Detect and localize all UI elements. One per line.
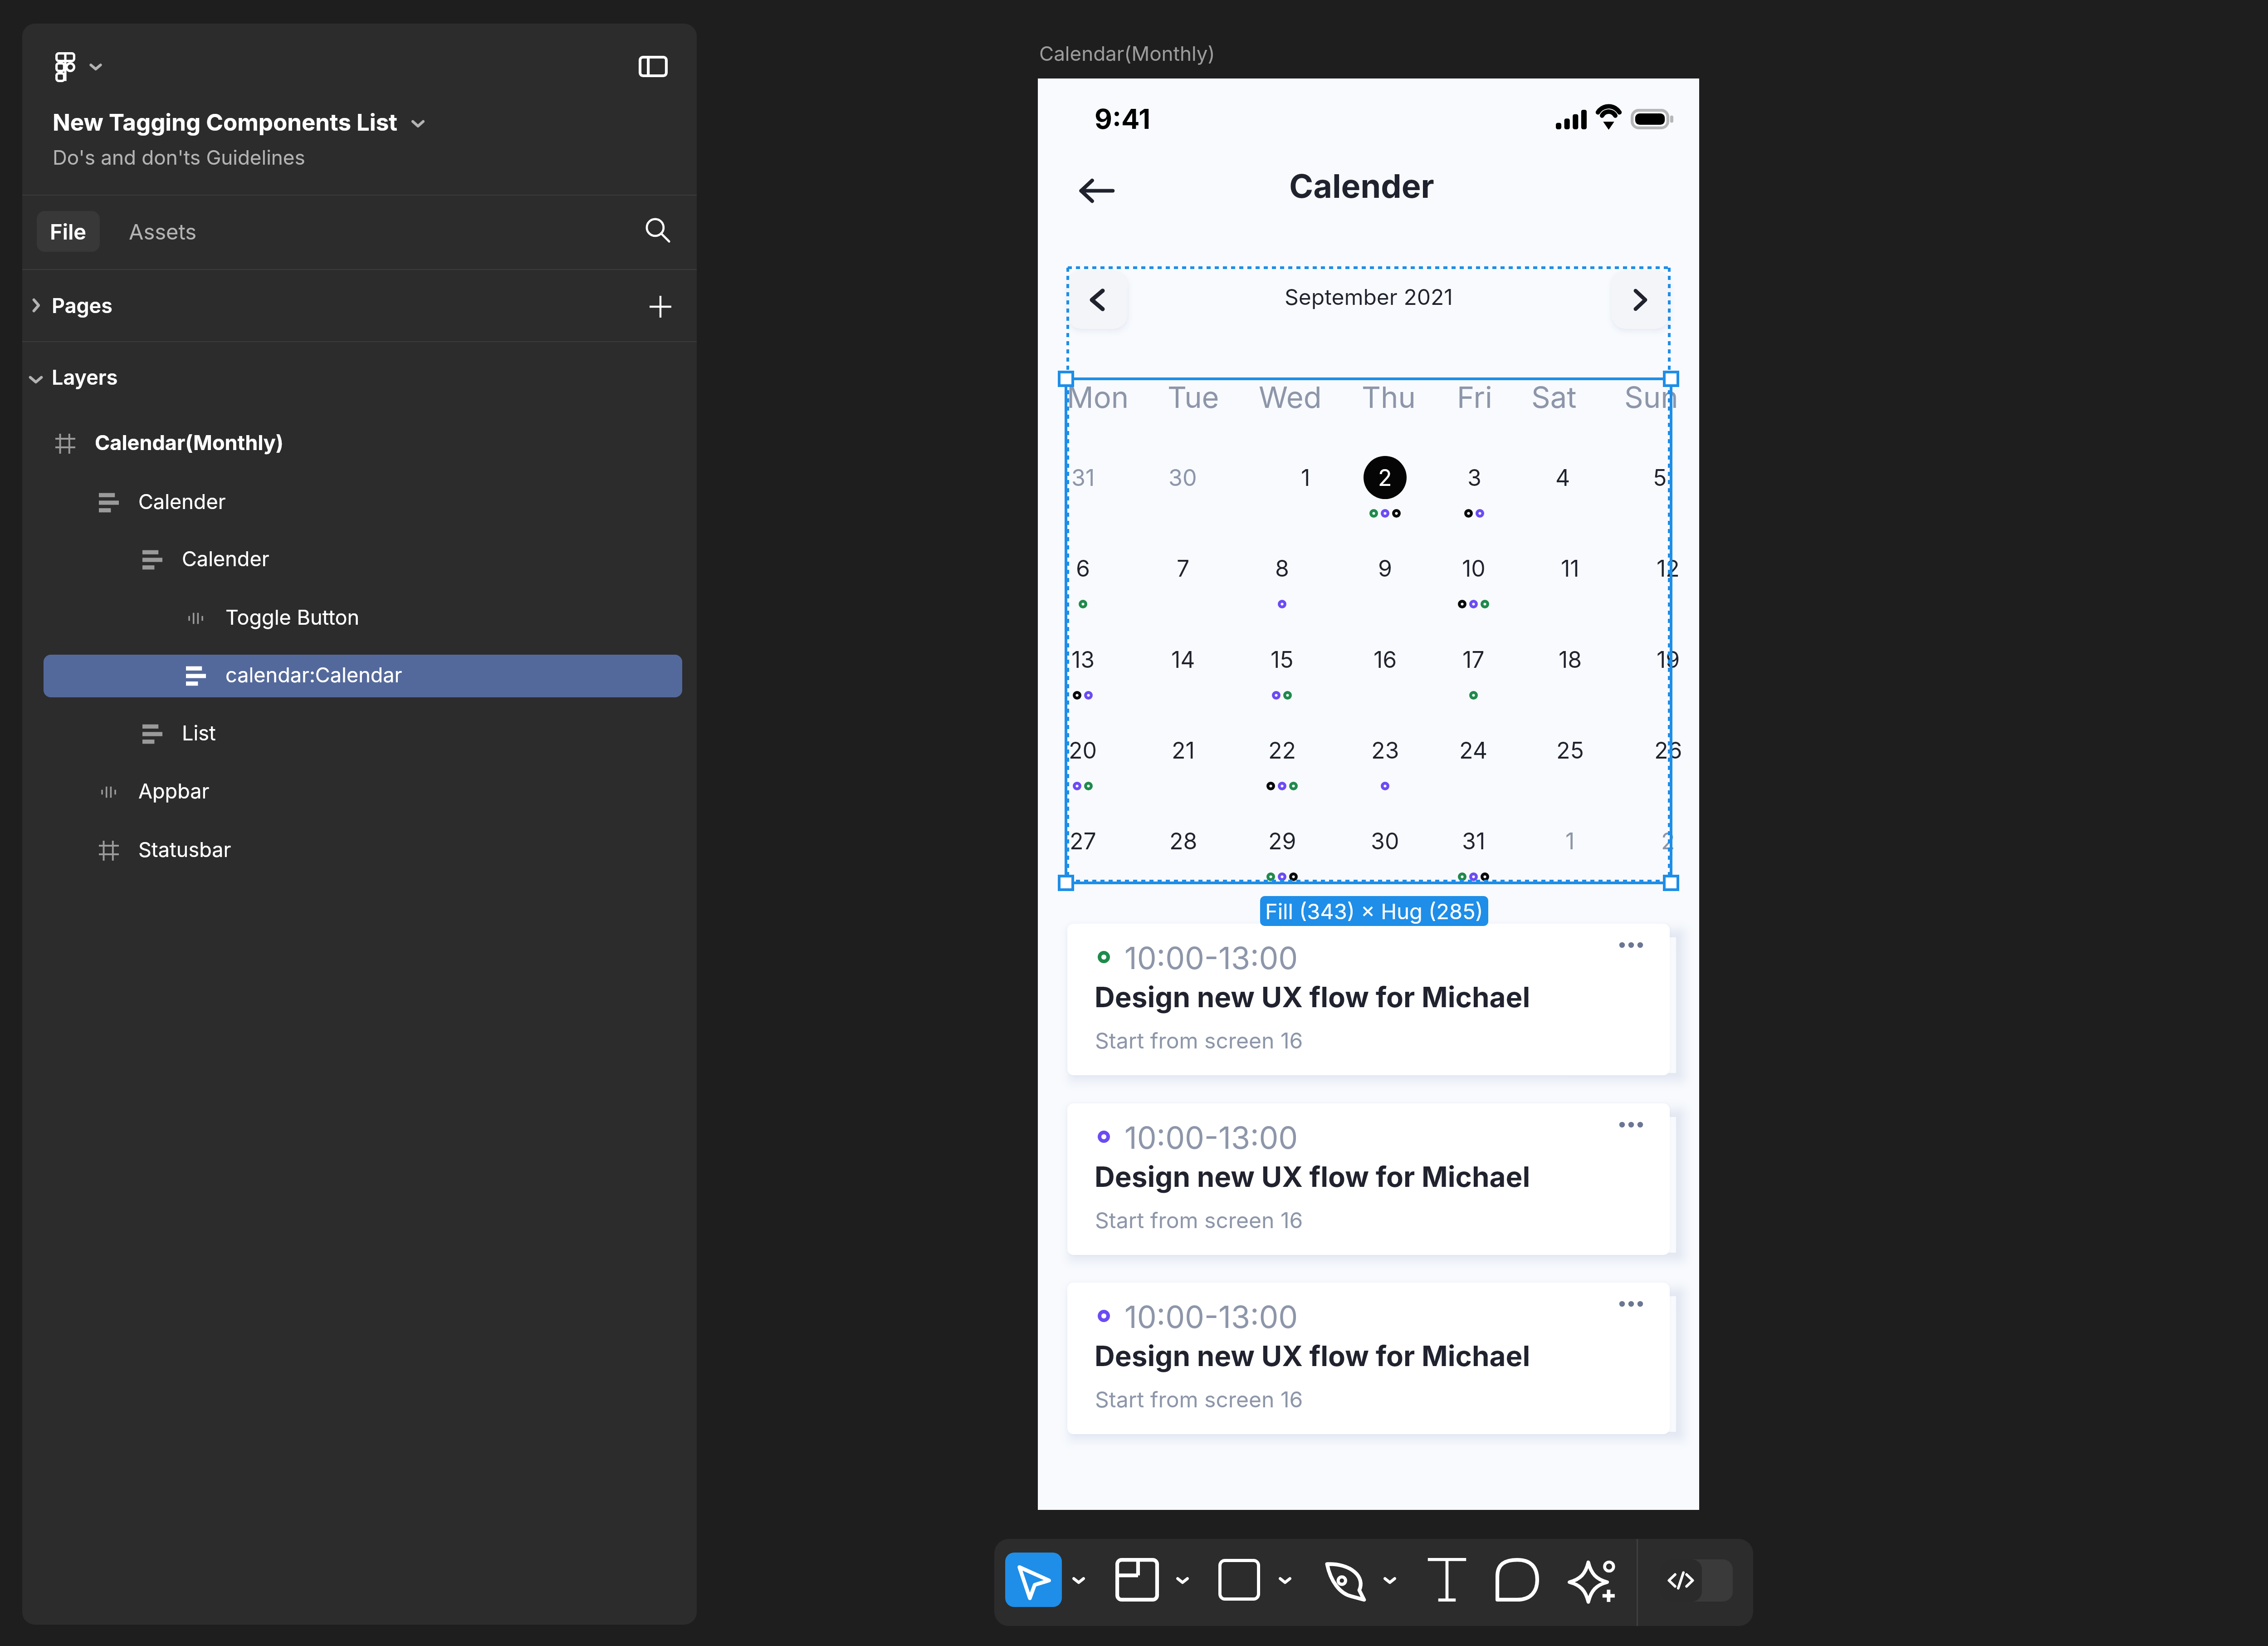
- button[interactable]: More options: [1608, 929, 1654, 961]
- button[interactable]: 12: [1619, 531, 1716, 623]
- staticText: 1: [1301, 464, 1310, 491]
- button[interactable]: [44, 829, 682, 872]
- button[interactable]: [44, 539, 682, 581]
- button[interactable]: 3: [1426, 441, 1523, 532]
- staticText: New Tagging Components List: [53, 108, 397, 137]
- staticText: 3: [1467, 464, 1481, 491]
- button[interactable]: 5: [1611, 441, 1708, 532]
- staticText: 14: [1171, 646, 1195, 673]
- button[interactable]: 10: [1425, 531, 1522, 623]
- staticText: Start from screen 16: [1095, 1386, 1303, 1412]
- button[interactable]: 1: [1521, 804, 1618, 896]
- button[interactable]: More tools: [1272, 1568, 1298, 1592]
- button[interactable]: [44, 713, 682, 755]
- button[interactable]: 25: [1521, 713, 1618, 805]
- staticText: 9:41: [1095, 103, 1151, 136]
- staticText: 30: [1168, 464, 1197, 491]
- button[interactable]: Pen tool: [1323, 1558, 1366, 1602]
- button[interactable]: File: [37, 211, 100, 252]
- button[interactable]: Next month: [1611, 271, 1670, 329]
- staticText: 11: [1561, 555, 1579, 582]
- staticText: Sat: [1531, 379, 1577, 411]
- button[interactable]: Search: [635, 207, 680, 253]
- button[interactable]: 29: [1233, 804, 1330, 896]
- staticText: 22: [1268, 737, 1296, 764]
- button[interactable]: 10:00-13:00: [1067, 924, 1670, 1075]
- staticText: 30: [1371, 828, 1399, 855]
- button[interactable]: [44, 655, 682, 697]
- staticText: Calender: [182, 546, 269, 571]
- button[interactable]: 2: [1336, 441, 1433, 532]
- button[interactable]: 31: [1425, 804, 1522, 896]
- button[interactable]: 16: [1336, 622, 1433, 714]
- button[interactable]: 10:00-13:00: [1067, 1103, 1670, 1255]
- button[interactable]: More tools: [1377, 1568, 1403, 1592]
- staticText: 2: [1661, 828, 1675, 855]
- button[interactable]: 1: [1257, 441, 1354, 532]
- staticText: Assets: [129, 219, 197, 245]
- button[interactable]: [44, 771, 682, 813]
- button[interactable]: 10:00-13:00: [1067, 1283, 1670, 1434]
- button[interactable]: 9: [1336, 531, 1433, 623]
- staticText: 31: [1071, 464, 1095, 491]
- button[interactable]: Pages: [22, 270, 697, 341]
- staticText: 15: [1271, 646, 1294, 673]
- button[interactable]: Figma menu: [55, 52, 75, 82]
- button[interactable]: 17: [1425, 622, 1522, 714]
- button[interactable]: 2: [1619, 804, 1716, 896]
- staticText: Calender: [138, 489, 226, 514]
- button[interactable]: Shape tool: [1218, 1559, 1260, 1601]
- button[interactable]: 8: [1233, 531, 1330, 623]
- button[interactable]: Previous month: [1067, 271, 1128, 329]
- button[interactable]: 11: [1521, 531, 1618, 623]
- staticText: 18: [1559, 646, 1582, 673]
- button[interactable]: 18: [1521, 622, 1618, 714]
- button[interactable]: More options: [1608, 1109, 1654, 1141]
- button[interactable]: 31: [1034, 441, 1131, 532]
- button[interactable]: 23: [1336, 713, 1433, 805]
- button[interactable]: 30: [1336, 804, 1433, 896]
- button[interactable]: [44, 422, 682, 465]
- button[interactable]: 30: [1134, 441, 1231, 532]
- button[interactable]: Assets: [118, 211, 207, 252]
- button[interactable]: 6: [1034, 531, 1131, 623]
- staticText: Appbar: [138, 779, 210, 803]
- staticText: Calendar(Monthly): [1039, 41, 1215, 65]
- staticText: Pages: [52, 293, 112, 318]
- button[interactable]: 7: [1134, 531, 1232, 623]
- button[interactable]: 19: [1619, 622, 1716, 714]
- button[interactable]: 27: [1034, 804, 1131, 896]
- button[interactable]: 24: [1425, 713, 1522, 805]
- button[interactable]: Toggle right panel: [639, 56, 668, 77]
- button[interactable]: [44, 597, 682, 640]
- button[interactable]: Dev mode: [1660, 1559, 1702, 1602]
- button[interactable]: 22: [1233, 713, 1330, 805]
- staticText: 25: [1556, 737, 1584, 764]
- button[interactable]: Text tool: [1425, 1558, 1469, 1602]
- button[interactable]: More options: [1608, 1288, 1654, 1320]
- button[interactable]: Actions: [1569, 1556, 1617, 1603]
- button[interactable]: Move tool: [1005, 1553, 1062, 1607]
- button[interactable]: 20: [1034, 713, 1131, 805]
- button[interactable]: Add page: [650, 296, 671, 318]
- staticText: calendar:Calendar: [225, 662, 402, 687]
- button[interactable]: 26: [1619, 713, 1716, 805]
- button[interactable]: More tools: [1170, 1568, 1195, 1592]
- button[interactable]: 4: [1514, 441, 1611, 532]
- button[interactable]: 21: [1134, 713, 1232, 805]
- staticText: 6: [1076, 555, 1090, 582]
- button[interactable]: 28: [1134, 804, 1232, 896]
- button[interactable]: 15: [1233, 622, 1330, 714]
- button[interactable]: [44, 481, 682, 524]
- button[interactable]: 14: [1134, 622, 1232, 714]
- button[interactable]: Comment: [1496, 1558, 1539, 1602]
- button[interactable]: 13: [1034, 622, 1131, 714]
- staticText: Toggle Button: [225, 605, 360, 629]
- button[interactable]: More tools: [1066, 1568, 1091, 1592]
- button[interactable]: Back: [1068, 162, 1125, 219]
- staticText: September 2021: [1285, 284, 1453, 310]
- button[interactable]: Layers: [22, 342, 697, 417]
- button[interactable]: Frame tool: [1115, 1558, 1159, 1602]
- staticText: 8: [1275, 555, 1289, 582]
- staticText: 2: [1378, 464, 1392, 491]
